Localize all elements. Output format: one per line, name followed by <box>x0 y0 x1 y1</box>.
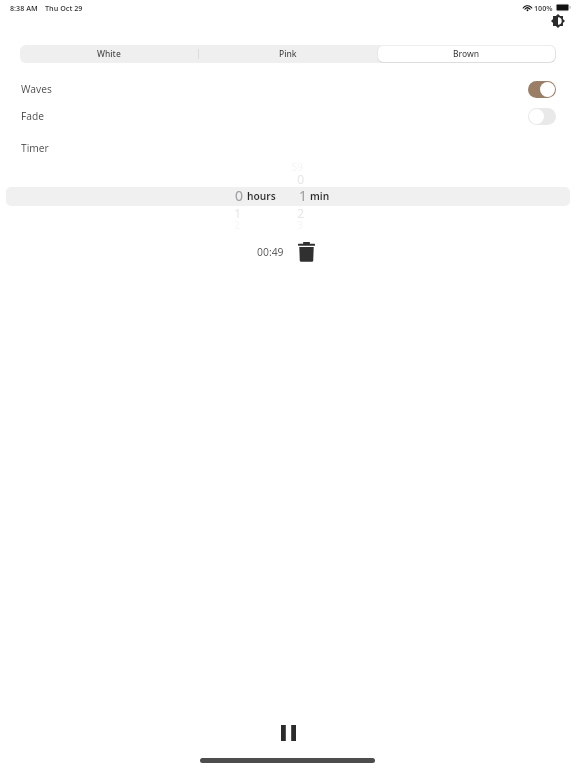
staticText: 2 <box>260 205 304 221</box>
staticText: Fade <box>21 109 45 123</box>
staticText: Timer <box>21 141 49 155</box>
staticText: Waves <box>21 82 52 96</box>
staticText: 100% <box>534 3 553 13</box>
button[interactable]: Fade <box>0 103 576 129</box>
staticText: 1 <box>197 205 241 221</box>
button[interactable]: Pause <box>270 716 306 750</box>
staticText: 0 <box>260 171 304 187</box>
staticText: Thu Oct 29 <box>45 3 83 13</box>
staticText: Pink <box>279 48 297 60</box>
staticText: min <box>310 189 330 203</box>
button[interactable]: Pink <box>198 45 377 63</box>
button[interactable]: Hours wheel, 0 hours <box>226 158 278 232</box>
button[interactable]: Brown <box>377 45 556 63</box>
staticText: 1 <box>263 186 307 205</box>
staticText: Brown <box>453 48 480 60</box>
staticText: White <box>97 48 121 60</box>
button[interactable]: Waves <box>0 76 576 102</box>
button[interactable]: White <box>20 45 198 63</box>
button[interactable]: Toggle dark mode <box>547 10 568 31</box>
button[interactable]: Minutes wheel, 1 min <box>288 158 330 232</box>
staticText: hours <box>247 189 276 203</box>
staticText: 8:38 AM <box>10 3 38 13</box>
button[interactable]: Delete timer <box>294 238 318 265</box>
staticText: 0 <box>199 186 243 205</box>
staticText: 00:49 <box>257 245 284 259</box>
